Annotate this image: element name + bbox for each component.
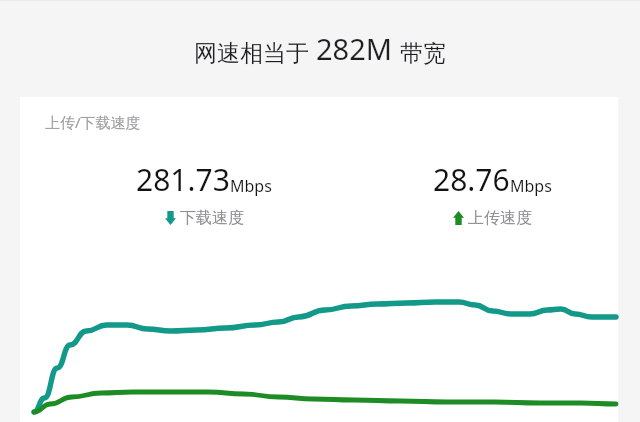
staticText: Mbps bbox=[230, 175, 272, 197]
staticText: 带宽 bbox=[400, 39, 446, 68]
other: Upload speed bbox=[453, 211, 464, 225]
staticText: 281.73 bbox=[136, 159, 230, 200]
staticText: 下载速度 bbox=[180, 208, 244, 228]
button[interactable]: 28.76 bbox=[392, 159, 592, 228]
staticText: 28.76 bbox=[433, 159, 510, 200]
button[interactable]: 上传/下载速度 bbox=[20, 97, 618, 422]
button[interactable]: 281.73 bbox=[104, 159, 304, 228]
staticText: 282M bbox=[316, 29, 393, 68]
staticText: 上传速度 bbox=[468, 208, 532, 228]
staticText: 网速相当于 bbox=[194, 39, 309, 68]
other: Download speed bbox=[165, 211, 176, 225]
staticText: 上传/下载速度 bbox=[45, 112, 141, 132]
staticText: Mbps bbox=[510, 175, 552, 197]
